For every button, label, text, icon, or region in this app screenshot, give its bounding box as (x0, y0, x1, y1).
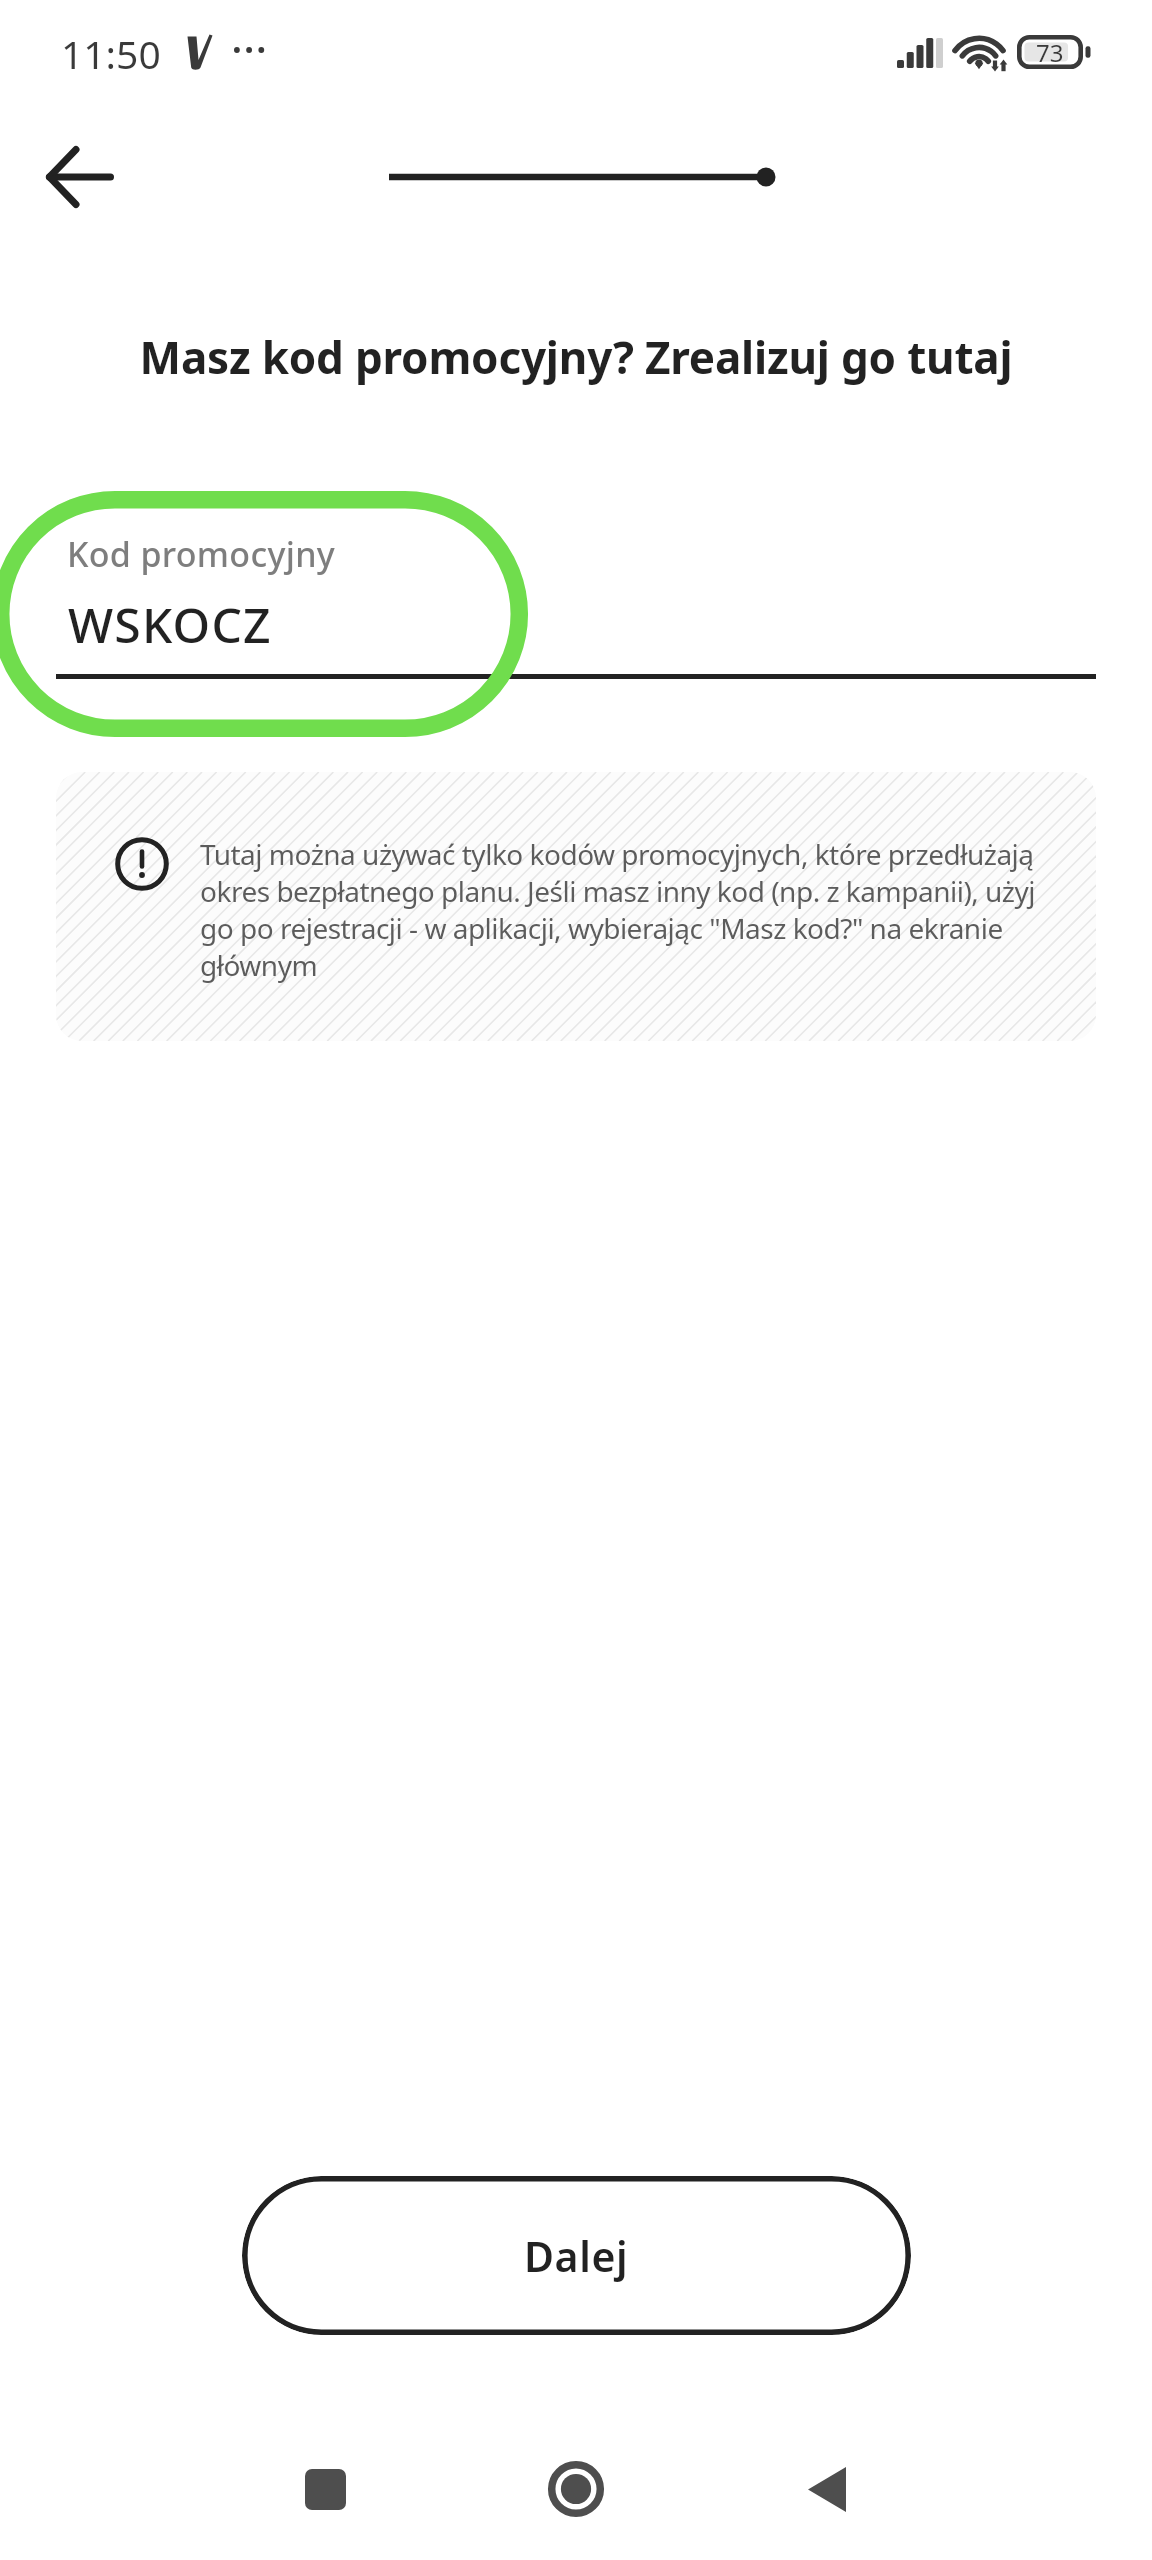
button[interactable]: Dalej (242, 2176, 911, 2335)
staticText: Tutaj można używać tylko kodów promocyjn… (200, 835, 1050, 984)
button[interactable]: Kod promocyjny (0, 486, 1152, 738)
button[interactable]: Home (506, 2419, 646, 2559)
button[interactable]: Back (757, 2419, 897, 2559)
staticText: Masz kod promocyjny? Zrealizuj go tutaj (0, 327, 1152, 387)
staticText: Dalej (524, 2228, 629, 2284)
staticText: Kod promocyjny (67, 531, 336, 577)
button[interactable]: Recent apps (255, 2419, 395, 2559)
button[interactable]: Back (26, 123, 134, 231)
staticText: WSKOCZ (68, 592, 272, 657)
staticText: 11:50 (61, 27, 161, 80)
staticText: 73 (1036, 36, 1064, 69)
